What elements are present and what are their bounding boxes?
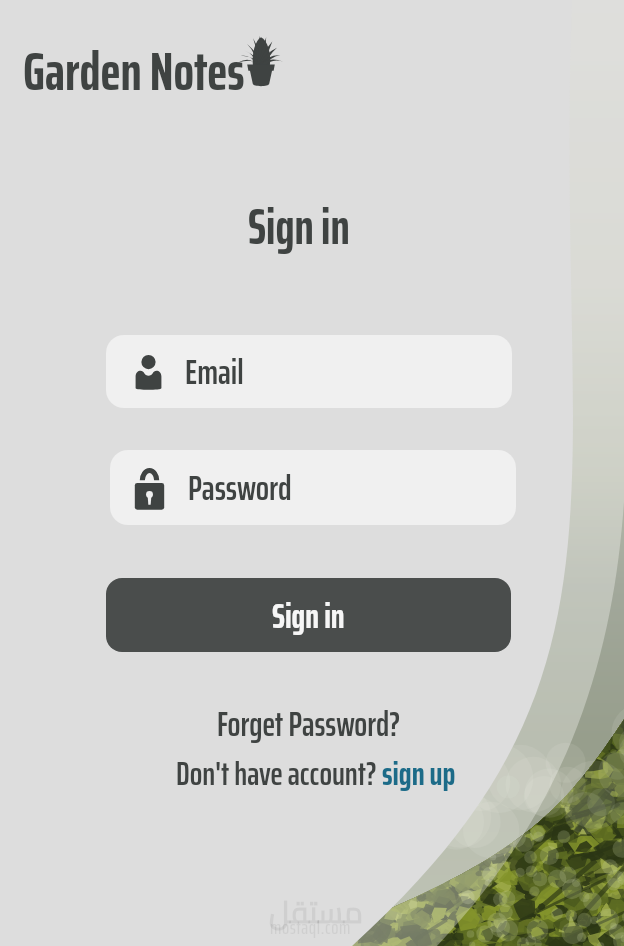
button[interactable]: Forget Password?	[217, 697, 401, 751]
staticText: mostaql.com	[270, 912, 351, 942]
button[interactable]: sign up	[382, 748, 456, 800]
button[interactable]: Email	[106, 335, 512, 408]
staticText: Garden Notes	[23, 29, 245, 114]
button[interactable]: Password	[110, 450, 516, 525]
staticText: Sign in	[272, 588, 345, 643]
other: Garden Notes logo	[241, 34, 281, 87]
staticText: مستقل	[269, 884, 364, 940]
staticText: Sign in	[248, 188, 350, 265]
button[interactable]: Sign in	[106, 578, 511, 652]
staticText: Don't have account?	[176, 748, 382, 800]
staticText: Email	[185, 344, 244, 399]
staticText: Password	[188, 460, 292, 515]
staticText: Forget Password?	[217, 697, 401, 751]
